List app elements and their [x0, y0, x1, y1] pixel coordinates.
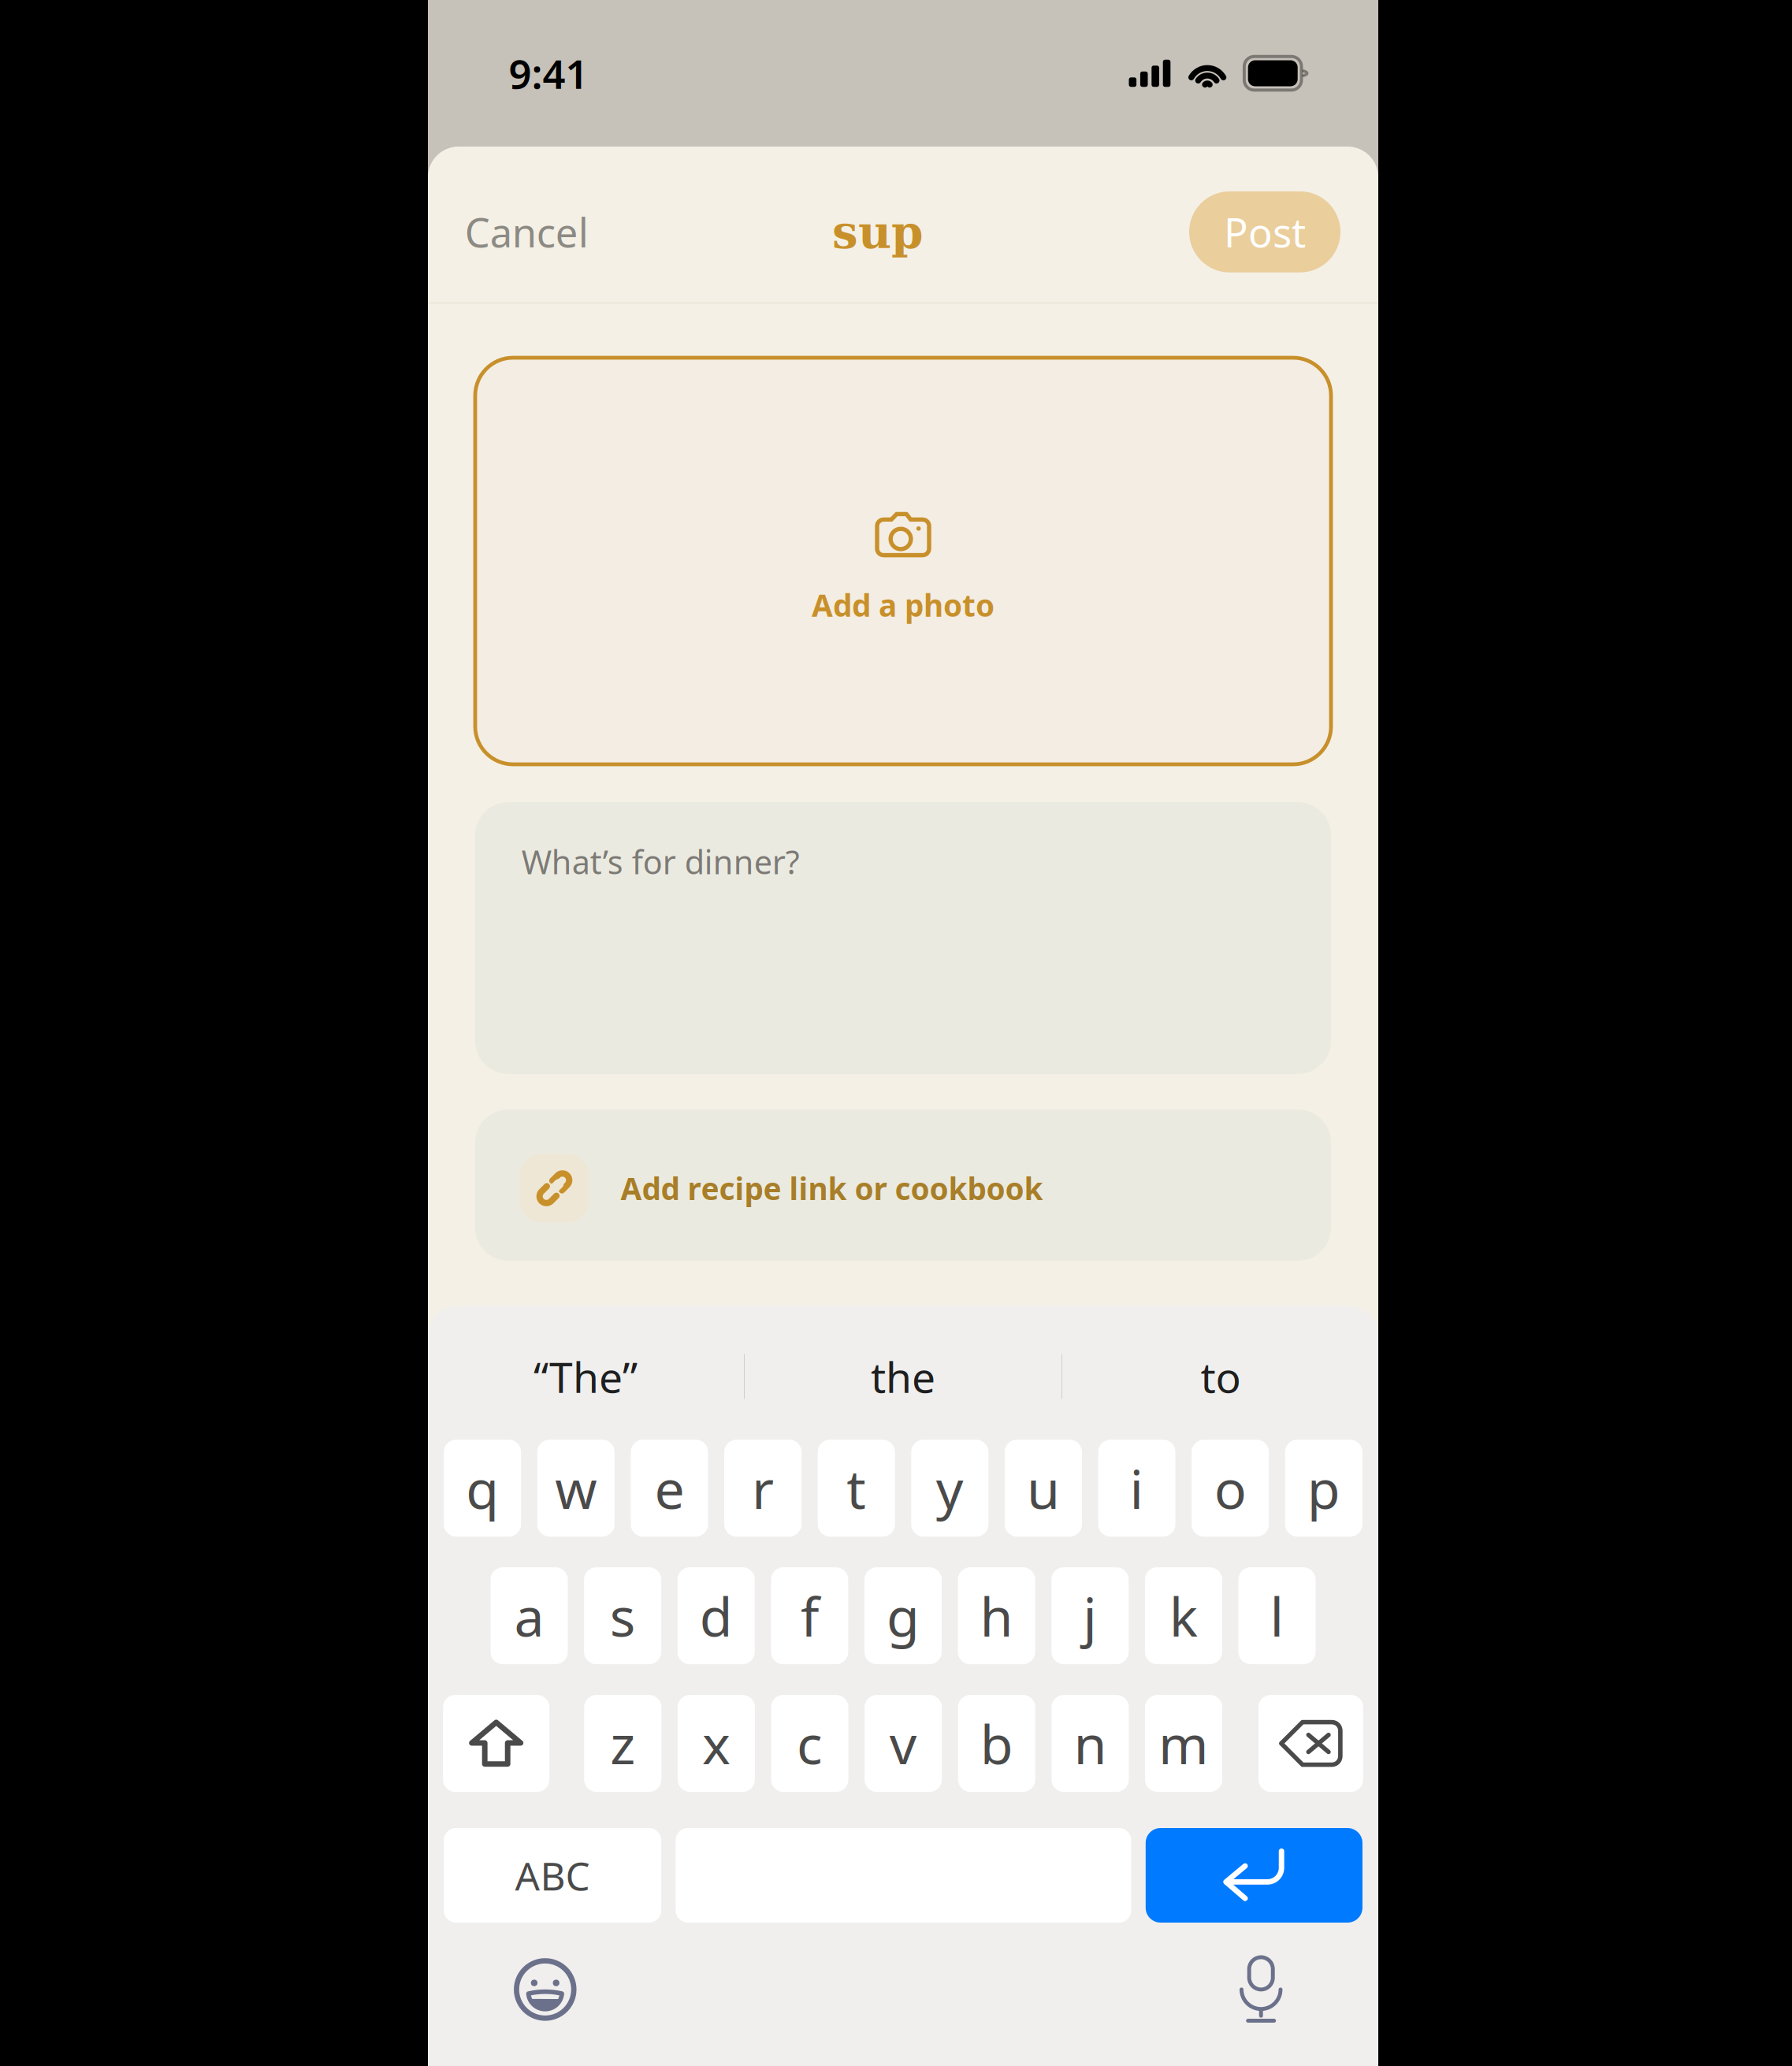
button[interactable]: n — [1052, 1695, 1129, 1792]
staticText: a — [514, 1580, 544, 1651]
staticText: to — [1201, 1349, 1241, 1404]
button[interactable]: the — [745, 1325, 1061, 1429]
staticText: h — [980, 1580, 1013, 1651]
button[interactable]: Delete — [1258, 1695, 1363, 1792]
staticText: r — [752, 1453, 774, 1524]
button[interactable]: u — [1005, 1440, 1082, 1537]
staticText: o — [1214, 1453, 1246, 1524]
staticText: p — [1307, 1453, 1340, 1524]
button[interactable]: x — [678, 1695, 755, 1792]
button[interactable]: o — [1192, 1440, 1269, 1537]
staticText: x — [702, 1708, 730, 1779]
staticText: f — [801, 1580, 819, 1651]
staticText: n — [1074, 1708, 1107, 1779]
staticText: v — [889, 1708, 917, 1779]
button[interactable]: w — [537, 1440, 615, 1537]
staticText: Add a photo — [812, 585, 995, 625]
button[interactable]: Dictate — [1214, 1942, 1308, 2037]
button[interactable]: a — [491, 1567, 568, 1664]
button[interactable]: Post — [1189, 191, 1340, 272]
staticText: w — [555, 1453, 597, 1524]
staticText: y — [936, 1453, 964, 1524]
button[interactable]: g — [864, 1567, 942, 1664]
staticText: k — [1169, 1580, 1198, 1651]
staticText: l — [1270, 1580, 1284, 1651]
staticText: t — [847, 1453, 866, 1524]
button[interactable]: ABC — [444, 1828, 661, 1923]
button[interactable]: y — [911, 1440, 988, 1537]
staticText: q — [466, 1453, 499, 1524]
button[interactable]: t — [818, 1440, 895, 1537]
button[interactable]: Shift — [443, 1695, 549, 1792]
button[interactable]: “The” — [427, 1325, 744, 1429]
staticText: g — [887, 1580, 920, 1651]
staticText: What’s for dinner? — [522, 840, 800, 883]
button[interactable]: Cancel — [465, 187, 589, 277]
staticText: d — [700, 1580, 733, 1651]
staticText: 9:41 — [509, 47, 588, 100]
button[interactable]: m — [1145, 1695, 1222, 1792]
button[interactable]: to — [1062, 1325, 1379, 1429]
button[interactable]: h — [958, 1567, 1035, 1664]
staticText: “The” — [534, 1349, 638, 1404]
staticText: e — [654, 1453, 684, 1524]
button[interactable]: k — [1145, 1567, 1222, 1664]
button[interactable]: Return — [1146, 1828, 1362, 1923]
button[interactable]: l — [1238, 1567, 1316, 1664]
button[interactable]: q — [444, 1440, 521, 1537]
staticText: i — [1130, 1453, 1144, 1524]
button[interactable]: p — [1285, 1440, 1362, 1537]
button[interactable]: Add a photo — [475, 358, 1331, 764]
staticText: ABC — [515, 1849, 590, 1901]
button[interactable]: v — [865, 1695, 942, 1792]
staticText: u — [1027, 1453, 1060, 1524]
staticText: z — [610, 1708, 635, 1779]
staticText: sup — [832, 205, 924, 259]
staticText: m — [1158, 1708, 1209, 1779]
button[interactable]: c — [771, 1695, 848, 1792]
staticText: Add recipe link or cookbook — [621, 1168, 1043, 1208]
button[interactable]: Emoji — [498, 1942, 592, 2037]
button[interactable]: b — [958, 1695, 1035, 1792]
button[interactable]: Add recipe link or cookbook — [475, 1109, 1331, 1261]
staticText: b — [980, 1708, 1013, 1779]
button[interactable]: j — [1051, 1567, 1129, 1664]
staticText: j — [1083, 1580, 1097, 1651]
button[interactable]: What’s for dinner? — [475, 802, 1331, 1074]
staticText: the — [871, 1349, 935, 1404]
button[interactable]: r — [724, 1440, 802, 1537]
staticText: Post — [1224, 205, 1306, 258]
button[interactable]: e — [631, 1440, 708, 1537]
button[interactable]: d — [678, 1567, 755, 1664]
button[interactable]: z — [584, 1695, 661, 1792]
staticText: c — [797, 1708, 823, 1779]
button[interactable]: f — [771, 1567, 848, 1664]
staticText: s — [610, 1580, 636, 1651]
button[interactable]: s — [584, 1567, 661, 1664]
staticText: Cancel — [465, 205, 589, 258]
button[interactable]: i — [1098, 1440, 1175, 1537]
